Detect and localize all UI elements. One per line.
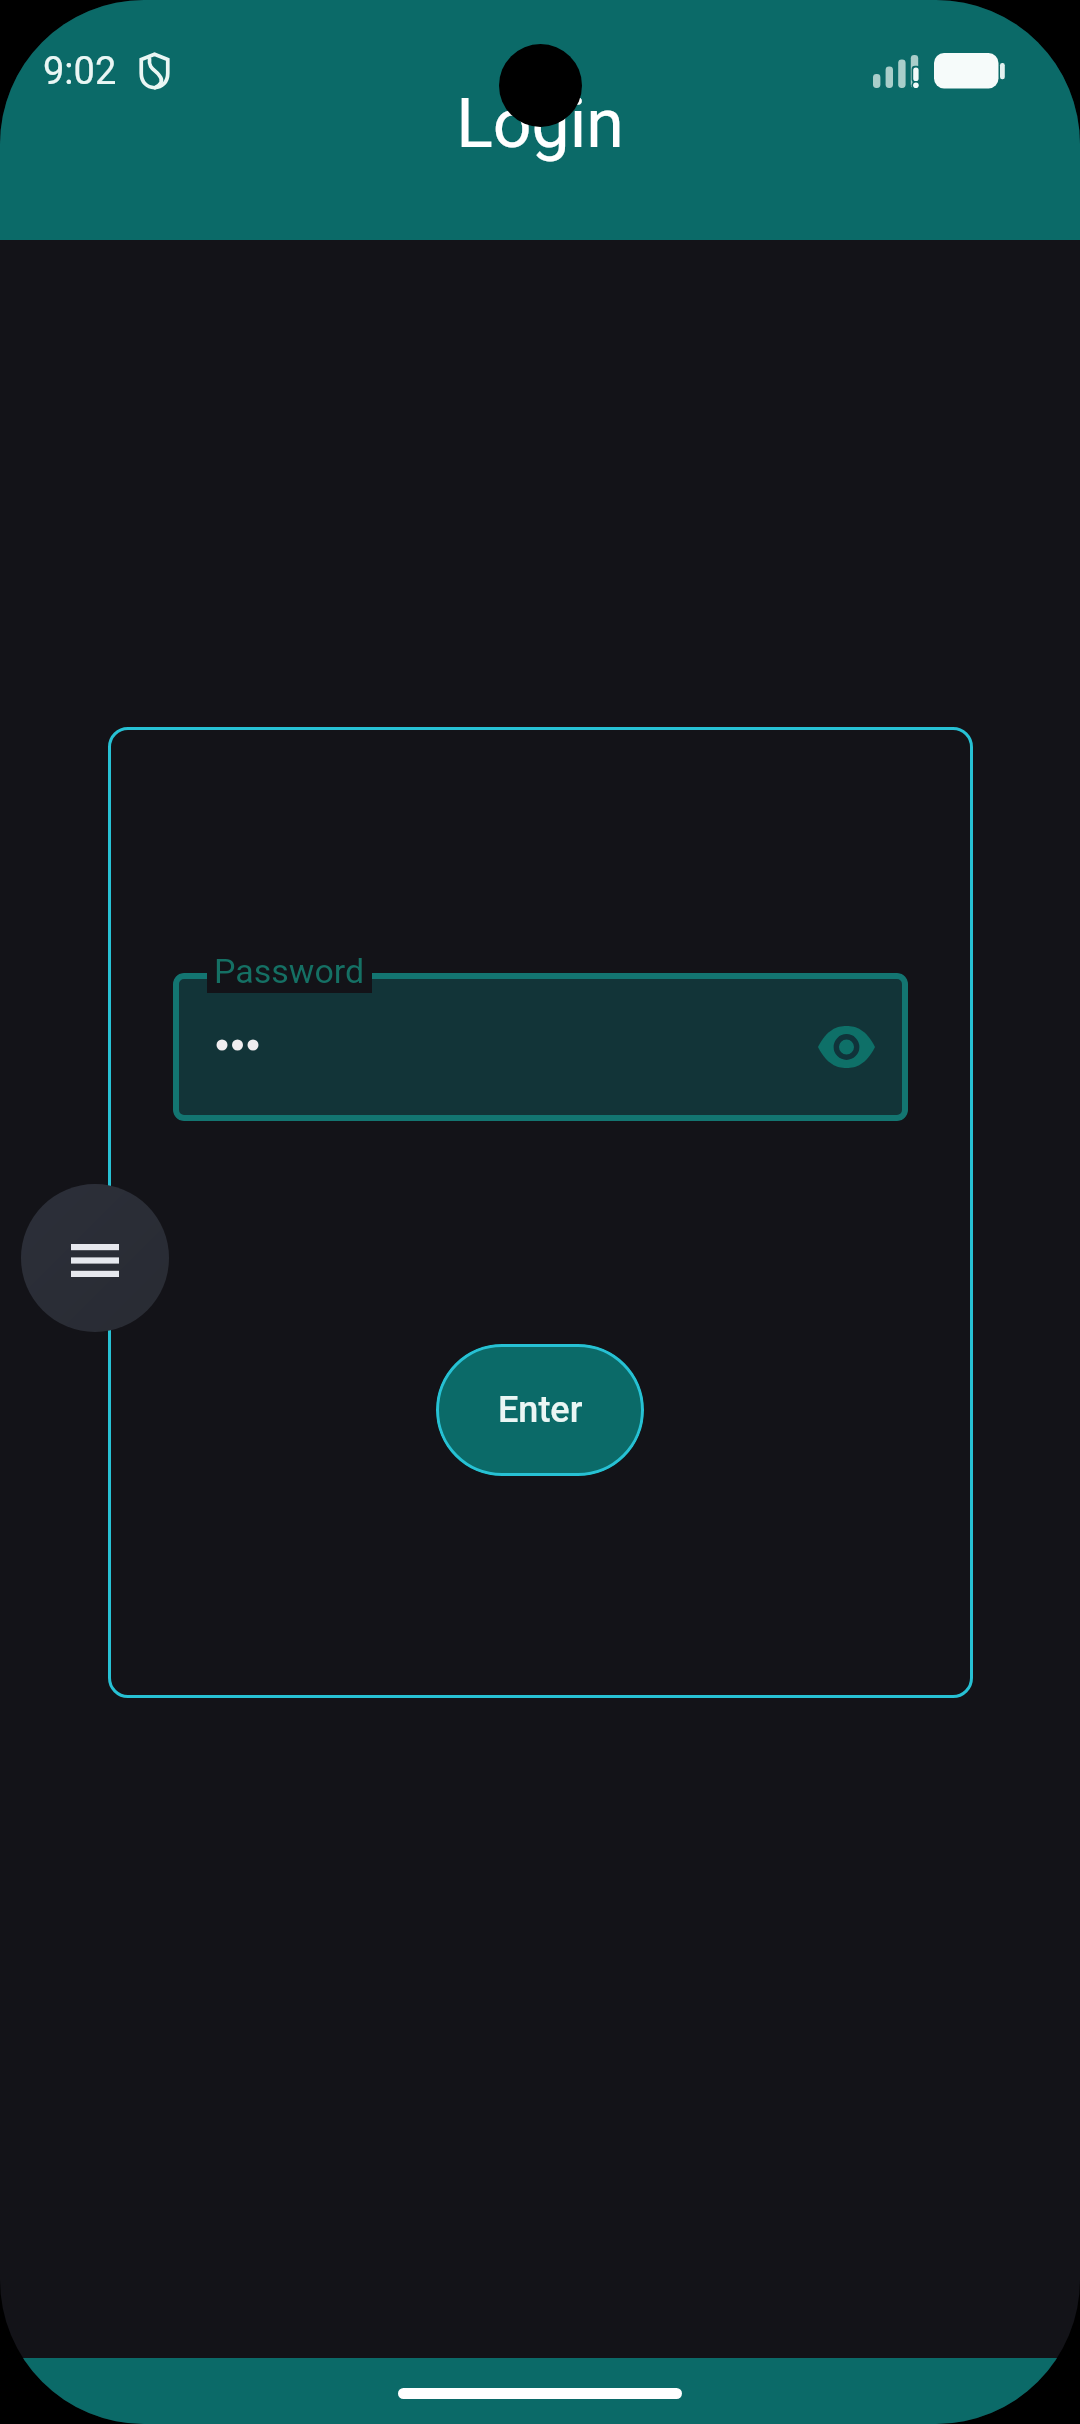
staticText: Login: [0, 84, 1080, 164]
button[interactable]: Menu: [21, 1184, 169, 1332]
button[interactable]: Enter: [436, 1344, 644, 1476]
staticText: Password: [214, 951, 365, 991]
button[interactable]: [173, 973, 908, 1121]
staticText: 9:02: [43, 49, 117, 94]
button[interactable]: Show password: [812, 1013, 880, 1081]
staticText: Enter: [498, 1389, 583, 1431]
